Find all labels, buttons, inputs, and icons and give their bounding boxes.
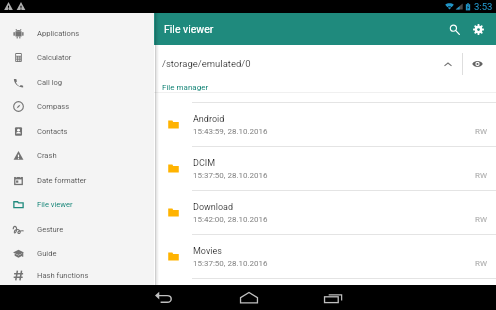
staticText: RW bbox=[475, 259, 488, 268]
staticText: Compass bbox=[37, 102, 70, 111]
staticText: 15:43:59, 28.10.2016 bbox=[193, 127, 268, 136]
staticText: Date formatter bbox=[37, 176, 87, 185]
button[interactable]: Movies bbox=[154, 235, 496, 279]
staticText: Movies bbox=[193, 246, 222, 257]
button[interactable]: Search bbox=[444, 19, 464, 39]
staticText: 15:37:50, 28.10.2016 bbox=[193, 171, 268, 180]
staticText: Download bbox=[193, 202, 234, 213]
button[interactable]: Back bbox=[145, 285, 181, 310]
button[interactable]: Crash bbox=[0, 143, 154, 168]
staticText: Call log bbox=[37, 78, 63, 87]
staticText: File viewer bbox=[164, 23, 214, 35]
staticText: Applications bbox=[37, 29, 80, 38]
button[interactable]: Show hidden bbox=[463, 49, 491, 79]
button[interactable]: Guide bbox=[0, 241, 154, 266]
staticText: Gesture bbox=[37, 225, 64, 234]
button[interactable]: Date formatter bbox=[0, 168, 154, 192]
staticText: Crash bbox=[37, 151, 57, 160]
staticText: Hash functions bbox=[37, 271, 89, 280]
button[interactable]: Recents bbox=[315, 285, 351, 310]
button[interactable]: File viewer bbox=[0, 192, 154, 217]
button[interactable]: Alarms bbox=[154, 93, 496, 103]
button[interactable]: Call log bbox=[0, 70, 154, 94]
button[interactable]: Home bbox=[231, 285, 267, 310]
button[interactable]: Calculator bbox=[0, 45, 154, 70]
staticText: Android bbox=[193, 114, 225, 125]
staticText: /storage/emulated/0 bbox=[162, 58, 251, 69]
staticText: Guide bbox=[37, 249, 57, 258]
button[interactable]: DCIM bbox=[154, 147, 496, 191]
staticText: Calculator bbox=[37, 53, 72, 62]
staticText: RW bbox=[475, 215, 488, 224]
button[interactable]: Applications bbox=[0, 21, 154, 45]
button[interactable]: Compass bbox=[0, 94, 154, 119]
staticText: 15:42:00, 28.10.2016 bbox=[193, 215, 268, 224]
button[interactable]: Contacts bbox=[0, 119, 154, 143]
button[interactable]: Download bbox=[154, 191, 496, 235]
staticText: File manager bbox=[162, 83, 209, 92]
staticText: Contacts bbox=[37, 127, 68, 136]
button[interactable]: Gesture bbox=[0, 217, 154, 241]
staticText: RW bbox=[475, 127, 488, 136]
button[interactable]: Android bbox=[154, 103, 496, 147]
staticText: File viewer bbox=[37, 200, 73, 209]
staticText: DCIM bbox=[193, 158, 216, 169]
staticText: RW bbox=[475, 171, 488, 180]
staticText: 15:37:50, 28.10.2016 bbox=[193, 259, 268, 268]
button[interactable]: Collapse bbox=[434, 49, 462, 79]
button[interactable]: Hash functions bbox=[0, 266, 154, 285]
button[interactable]: Settings bbox=[468, 19, 488, 39]
staticText: 3:53 bbox=[474, 1, 493, 12]
